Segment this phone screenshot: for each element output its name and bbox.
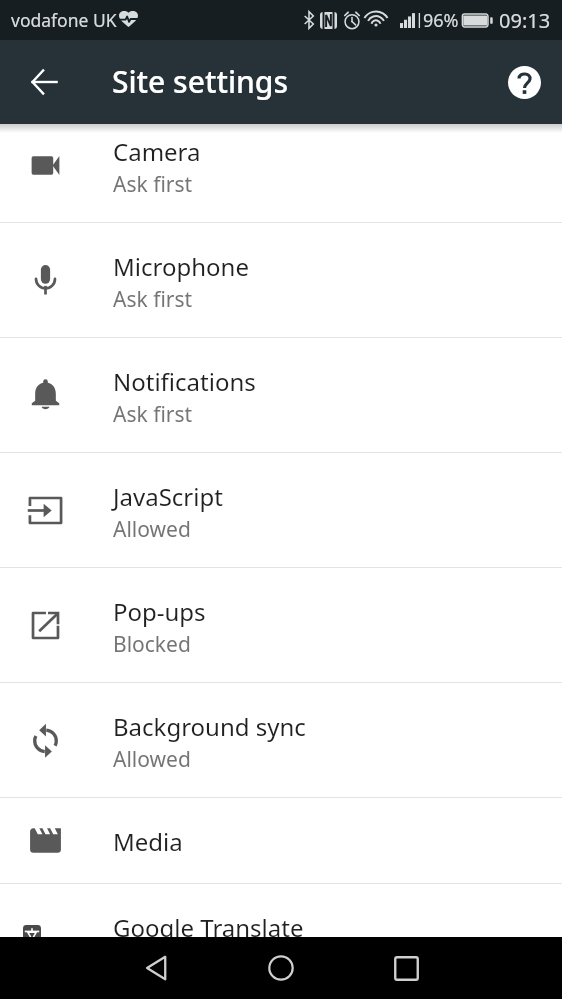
staticText: Allowed [113, 745, 191, 774]
button[interactable]: Help and feedback [496, 54, 552, 110]
staticText: JavaScript [113, 480, 223, 513]
staticText: Site settings [112, 61, 288, 102]
button[interactable]: Recent apps [380, 942, 432, 994]
staticText: Camera [113, 135, 201, 168]
button[interactable]: Microphone [0, 223, 562, 337]
button[interactable]: Navigate up [16, 54, 72, 110]
button[interactable]: Home [255, 942, 307, 994]
staticText: Google Translate [113, 911, 304, 944]
staticText: vodafone UK [11, 8, 117, 32]
staticText: Notifications [113, 365, 256, 398]
staticText: Blocked [113, 630, 191, 659]
staticText: 09:13 [499, 7, 551, 34]
button[interactable]: Background sync [0, 683, 562, 797]
staticText: Microphone [113, 250, 249, 283]
button[interactable]: Camera [0, 108, 562, 222]
staticText: Media [113, 825, 183, 858]
staticText: Allowed [113, 515, 191, 544]
staticText: Ask first [113, 285, 193, 314]
staticText: Ask first [113, 170, 193, 199]
button[interactable]: Media [0, 798, 562, 883]
staticText: Background sync [113, 710, 306, 743]
staticText: Ask first [113, 400, 193, 429]
button[interactable]: JavaScript [0, 453, 562, 567]
button[interactable]: Google Translate [0, 884, 562, 969]
button[interactable]: Pop-ups [0, 568, 562, 682]
staticText: Pop-ups [113, 595, 206, 628]
staticText: 96% [423, 8, 459, 33]
button[interactable]: Notifications [0, 338, 562, 452]
button[interactable]: Back [130, 942, 182, 994]
